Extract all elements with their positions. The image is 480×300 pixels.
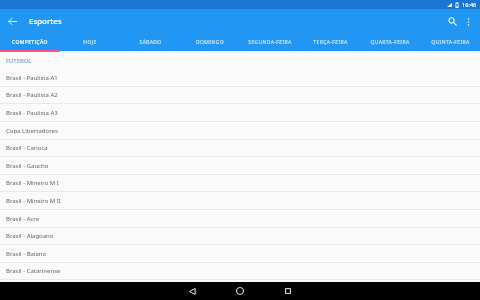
staticText: Brasil - Acre [6, 215, 40, 223]
staticText: Esportes [29, 16, 62, 27]
button[interactable]: Brasil - Mineiro M II [0, 192, 480, 210]
button[interactable]: DOMINGO [180, 34, 240, 51]
staticText: Brasil - Mineiro M II [6, 197, 61, 205]
button[interactable]: Back [168, 282, 216, 300]
staticText: SÁBADO [139, 39, 162, 46]
staticText: DOMINGO [196, 39, 224, 46]
button[interactable]: Brasil - Paulista A1 [0, 69, 480, 87]
staticText: QUARTA-FEIRA [370, 39, 410, 46]
button[interactable]: Brasil - Gaucho [0, 157, 480, 175]
button[interactable]: SÁBADO [120, 34, 180, 51]
staticText: Brasil - Catarinense [6, 267, 61, 275]
staticText: SEGUNDA-FEIRA [248, 39, 292, 46]
staticText: HOJE [83, 39, 97, 46]
button[interactable]: Back [0, 9, 25, 34]
staticText: FUTEBOL [6, 57, 32, 65]
staticText: Brasil - Paulista A2 [6, 91, 58, 99]
staticText: Brasil - Mineiro M I [6, 179, 59, 187]
button[interactable]: COMPETIÇÃO [0, 34, 60, 51]
button[interactable]: Copa Libertadores [0, 122, 480, 140]
button[interactable]: QUARTA-FEIRA [360, 34, 420, 51]
button[interactable]: QUINTA-FEIRA [420, 34, 480, 51]
staticText: Copa Libertadores [6, 127, 58, 135]
staticText: Brasil - Carioca [6, 144, 48, 152]
button[interactable]: Search [441, 9, 463, 34]
staticText: Brasil - Alagoano [6, 232, 54, 240]
button[interactable]: Brasil - Catarinense [0, 263, 480, 280]
staticText: QUINTA-FEIRA [431, 39, 470, 46]
staticText: COMPETIÇÃO [12, 39, 48, 46]
button[interactable]: TERÇA-FEIRA [300, 34, 360, 51]
staticText: Brasil - Paulista A1 [6, 74, 58, 82]
button[interactable]: Brasil - Paulista A3 [0, 104, 480, 122]
staticText: Brasil - Gaucho [6, 162, 49, 170]
button[interactable]: SEGUNDA-FEIRA [240, 34, 300, 51]
button[interactable]: Brasil - Mineiro M I [0, 175, 480, 192]
button[interactable]: More options [457, 9, 480, 34]
button[interactable]: Brasil - Paulista A2 [0, 87, 480, 104]
button[interactable]: Brasil - Baiano [0, 245, 480, 263]
staticText: Brasil - Paulista A3 [6, 109, 58, 117]
button[interactable]: Recent apps [264, 282, 312, 300]
staticText: TERÇA-FEIRA [313, 39, 348, 46]
button[interactable]: Brasil - Acre [0, 210, 480, 228]
button[interactable]: Brasil - Alagoano [0, 228, 480, 245]
staticText: Brasil - Baiano [6, 250, 47, 258]
button[interactable]: HOJE [60, 34, 120, 51]
staticText: 16:46 [462, 1, 477, 9]
button[interactable]: Home [216, 282, 264, 300]
button[interactable]: Brasil - Carioca [0, 140, 480, 157]
